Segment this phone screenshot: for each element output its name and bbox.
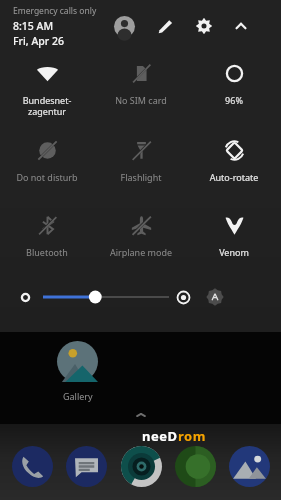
staticText: Fri, Apr 26 (13, 34, 64, 48)
button[interactable]: Gallery (57, 341, 98, 402)
button[interactable]: Flashlight (99, 129, 183, 183)
button[interactable]: Messages (62, 442, 110, 490)
button[interactable]: Venom (192, 204, 276, 258)
staticText: Auto-rotate (192, 171, 276, 183)
staticText: rom (178, 427, 206, 445)
button[interactable]: App (171, 442, 219, 490)
staticText: Emergency calls only (13, 5, 97, 17)
button[interactable]: Phone (8, 442, 56, 490)
button[interactable]: 96% (192, 52, 276, 106)
button[interactable]: No SIM card (99, 52, 183, 106)
staticText: Do not disturb (5, 171, 89, 183)
button[interactable] (43, 284, 169, 310)
staticText: No SIM card (99, 94, 183, 106)
staticText: Bundesnet- zagentur (5, 94, 89, 117)
staticText: Flashlight (99, 171, 183, 183)
staticText: 8:15 AM (13, 19, 54, 33)
button[interactable]: Auto-rotate (192, 129, 276, 183)
button[interactable]: Collapse (224, 9, 258, 43)
button[interactable]: Camera (117, 442, 165, 490)
staticText: Bluetooth (5, 246, 89, 258)
button[interactable]: Auto brightness (202, 284, 228, 310)
button[interactable]: Brightness high (170, 284, 196, 310)
staticText: Gallery (63, 390, 93, 402)
staticText: 96% (192, 94, 276, 106)
button[interactable]: Settings (187, 9, 221, 43)
staticText: Venom (192, 246, 276, 258)
button[interactable]: Expand notifications (128, 408, 154, 421)
staticText: Airplane mode (99, 246, 183, 258)
button[interactable]: Bundesnet- zagentur (5, 52, 89, 117)
button[interactable]: Bluetooth (5, 204, 89, 258)
button[interactable]: Airplane mode (99, 204, 183, 258)
button[interactable]: Brightness low (14, 286, 36, 308)
button[interactable]: Edit tiles (148, 9, 182, 43)
button[interactable]: Photos (225, 442, 273, 490)
button[interactable]: Do not disturb (5, 129, 89, 183)
button[interactable]: User (107, 9, 141, 43)
staticText: neeD (142, 427, 178, 445)
